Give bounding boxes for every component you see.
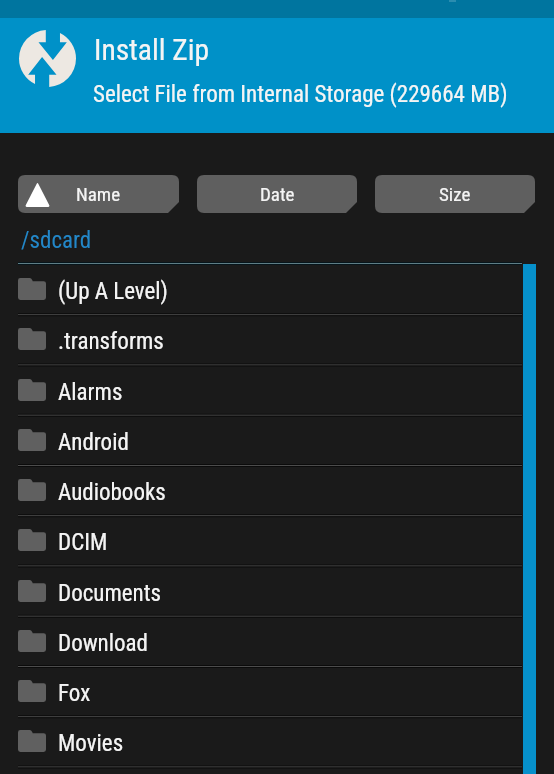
staticText: DCIM: [58, 529, 108, 556]
staticText: Documents: [58, 580, 161, 607]
button[interactable]: Android: [0, 415, 522, 465]
staticText: Install Zip: [94, 33, 210, 68]
staticText: Name: [76, 183, 121, 205]
button[interactable]: Music: [0, 767, 522, 774]
button[interactable]: DCIM: [0, 515, 522, 565]
button[interactable]: Date: [197, 175, 357, 213]
staticText: .transforms: [58, 328, 164, 355]
staticText: Fox: [58, 680, 91, 707]
staticText: (Up A Level): [58, 278, 168, 305]
button[interactable]: Documents: [0, 566, 522, 616]
button[interactable]: Size: [375, 175, 535, 213]
staticText: Size: [439, 183, 471, 205]
button[interactable]: Audiobooks: [0, 465, 522, 515]
button[interactable]: /sdcard: [21, 227, 92, 254]
staticText: Select File from Internal Storage (22966…: [93, 81, 508, 108]
button[interactable]: (Up A Level): [0, 264, 522, 314]
button[interactable]: Alarms: [0, 365, 522, 415]
button[interactable]: Movies: [0, 716, 522, 766]
staticText: /sdcard: [21, 227, 92, 254]
staticText: Android: [58, 429, 129, 456]
button[interactable]: Name: [18, 175, 179, 213]
other: TWRP logo: [19, 30, 76, 87]
staticText: Date: [260, 183, 295, 205]
staticText: Download: [58, 630, 149, 657]
staticText: Alarms: [58, 379, 123, 406]
staticText: Audiobooks: [58, 479, 166, 506]
button[interactable]: Download: [0, 616, 522, 666]
button[interactable]: .transforms: [0, 314, 522, 364]
staticText: Movies: [58, 730, 124, 757]
button[interactable]: Fox: [0, 666, 522, 716]
